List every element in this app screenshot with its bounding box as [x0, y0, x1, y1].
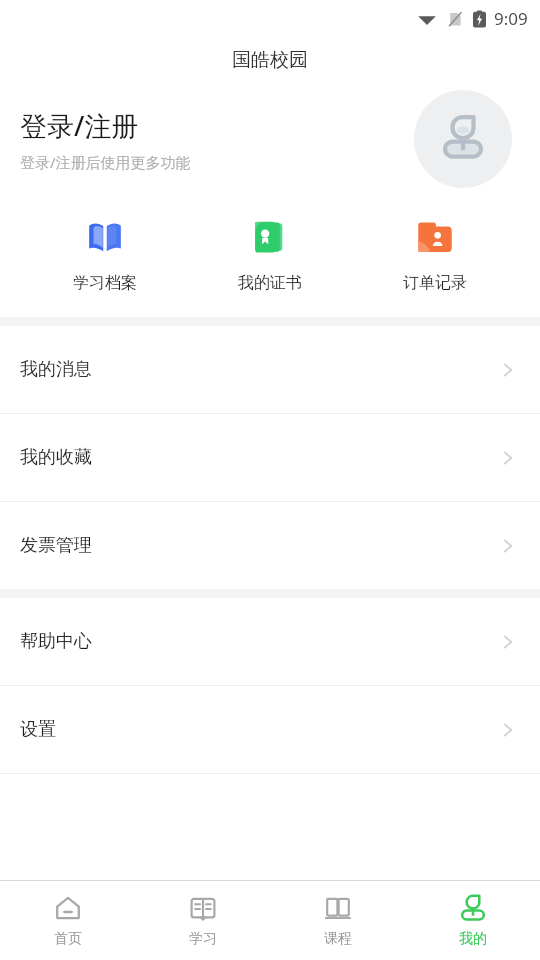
button[interactable]: 设置 — [0, 686, 540, 773]
staticText: 学习档案 — [73, 273, 137, 293]
staticText: 国皓校园 — [232, 48, 308, 72]
button[interactable]: 课程 — [270, 881, 405, 960]
staticText: 学习 — [189, 930, 217, 948]
staticText: 帮助中心 — [20, 630, 498, 653]
staticText: 登录/注册 — [20, 107, 139, 144]
staticText: 我的证书 — [238, 273, 302, 293]
staticText: 9:09 — [494, 7, 528, 30]
staticText: 订单记录 — [403, 273, 467, 293]
button[interactable]: 登录/注册 — [0, 84, 540, 194]
staticText: 发票管理 — [20, 534, 498, 557]
other: 我的 — [458, 894, 488, 924]
button[interactable]: 发票管理 — [0, 502, 540, 589]
button[interactable]: 我的 — [405, 881, 540, 960]
button[interactable]: 学习档案 — [45, 212, 165, 297]
staticText: 登录/注册后使用更多功能 — [20, 152, 191, 172]
button[interactable]: 我的证书 — [210, 212, 330, 297]
button[interactable]: 订单记录 — [375, 212, 495, 297]
button[interactable]: 我的收藏 — [0, 414, 540, 501]
staticText: 我的收藏 — [20, 446, 498, 469]
staticText: 首页 — [54, 930, 82, 948]
staticText: 我的消息 — [20, 358, 498, 381]
button[interactable]: 帮助中心 — [0, 598, 540, 685]
button[interactable]: 首页 — [0, 881, 135, 960]
staticText: 课程 — [324, 930, 352, 948]
staticText: 我的 — [459, 930, 487, 948]
button[interactable]: 我的消息 — [0, 326, 540, 413]
staticText: 设置 — [20, 718, 498, 741]
button[interactable]: 学习 — [135, 881, 270, 960]
